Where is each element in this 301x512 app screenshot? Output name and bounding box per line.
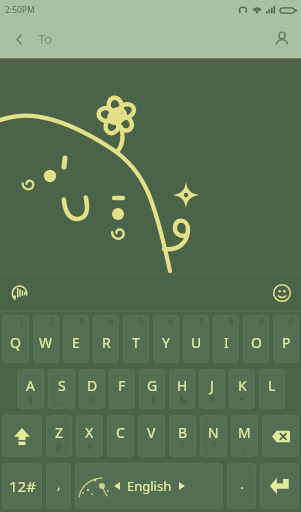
staticText: To	[38, 30, 53, 48]
staticText: F	[118, 376, 126, 395]
staticText: ,	[57, 475, 61, 493]
button[interactable]: Backspace	[262, 415, 299, 457]
staticText: V	[147, 423, 156, 442]
button[interactable]: Emoji	[269, 280, 295, 306]
staticText: C	[116, 423, 125, 442]
button[interactable]: M	[231, 415, 258, 457]
staticText: R	[102, 333, 111, 352]
staticText: 6	[169, 316, 174, 327]
staticText: G	[147, 376, 158, 395]
staticText: ,	[243, 440, 246, 452]
button[interactable]: C	[107, 415, 134, 457]
staticText: (	[91, 393, 94, 405]
button[interactable]: 9	[243, 315, 269, 363]
button[interactable]: 3	[63, 315, 89, 363]
staticText: H	[177, 376, 188, 395]
button[interactable]: 2	[33, 315, 59, 363]
staticText: 4	[109, 316, 114, 327]
staticText: &	[179, 393, 186, 405]
button[interactable]: 0	[273, 315, 299, 363]
button[interactable]: Enter	[260, 463, 299, 509]
staticText: Q	[10, 333, 21, 352]
staticText: :	[121, 393, 124, 405]
staticText: K	[238, 376, 247, 395]
staticText: X	[85, 423, 94, 442]
staticText: "	[270, 393, 274, 405]
staticText: 5	[139, 316, 144, 327]
staticText: +	[239, 393, 245, 405]
staticText: E	[72, 333, 80, 352]
staticText: N	[208, 423, 219, 442]
button[interactable]: Contacts	[263, 20, 301, 58]
staticText: !	[181, 440, 184, 452]
staticText: A	[26, 376, 35, 395]
button[interactable]: 5	[123, 315, 149, 363]
staticText: English	[127, 477, 172, 495]
button[interactable]: D	[79, 369, 105, 409]
staticText: 2:50PM	[5, 4, 35, 16]
button[interactable]: ,	[46, 463, 71, 509]
button[interactable]: 7	[183, 315, 209, 363]
button[interactable]: 12#	[2, 463, 42, 509]
staticText: 1	[19, 316, 24, 327]
staticText: 9	[259, 316, 264, 327]
staticText: W	[39, 333, 53, 352]
button[interactable]: V	[138, 415, 165, 457]
staticText: #	[209, 393, 215, 405]
button[interactable]: J	[199, 369, 225, 409]
button[interactable]: Z	[46, 415, 72, 457]
staticText: 0	[289, 316, 294, 327]
staticText: 2	[49, 316, 54, 327]
staticText: _	[60, 393, 64, 405]
button[interactable]: 6	[153, 315, 179, 363]
button[interactable]: Back	[0, 20, 38, 58]
staticText: Z	[55, 423, 64, 442]
staticText: /	[88, 440, 92, 452]
staticText: 8	[229, 316, 234, 327]
button[interactable]: H	[169, 369, 195, 409]
staticText: .	[240, 475, 244, 493]
button[interactable]: G	[139, 369, 165, 409]
staticText: 7	[199, 316, 204, 327]
staticText: O	[251, 333, 262, 352]
button[interactable]: K	[229, 369, 255, 409]
button[interactable]: F	[109, 369, 135, 409]
staticText: L	[268, 376, 276, 395]
button[interactable]: N	[200, 415, 227, 457]
staticText: P	[282, 333, 291, 352]
button[interactable]: 8	[213, 315, 239, 363]
button[interactable]: A	[17, 369, 44, 409]
staticText: D	[87, 376, 98, 395]
staticText: 12#	[9, 476, 36, 496]
staticText: -	[119, 440, 122, 452]
button[interactable]: Voice input	[6, 280, 32, 306]
button[interactable]: X	[76, 415, 103, 457]
staticText: )	[151, 393, 154, 405]
staticText: I	[224, 333, 229, 352]
button[interactable]: 4	[93, 315, 119, 363]
staticText: Y	[162, 333, 170, 352]
staticText: J	[210, 376, 214, 395]
staticText: B	[178, 423, 188, 442]
staticText: ?	[212, 440, 216, 452]
staticText: 3	[79, 316, 84, 327]
staticText: U	[191, 333, 202, 352]
button[interactable]: .	[227, 463, 256, 509]
staticText: M	[238, 423, 251, 442]
button[interactable]: S	[48, 369, 75, 409]
button[interactable]: 1	[2, 315, 29, 363]
button[interactable]: Shift	[2, 415, 42, 457]
button[interactable]: L	[259, 369, 285, 409]
staticText: @	[55, 440, 64, 452]
staticText: S	[58, 376, 66, 395]
staticText: \	[29, 393, 33, 405]
button[interactable]: B	[169, 415, 196, 457]
button[interactable]: English	[75, 463, 223, 509]
staticText: T	[132, 333, 140, 352]
